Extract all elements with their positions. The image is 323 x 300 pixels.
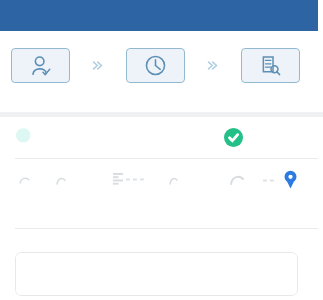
button[interactable]: Time slot step <box>126 48 185 83</box>
other: Location <box>283 170 298 189</box>
button[interactable]: Personal details step <box>11 48 70 83</box>
button[interactable] <box>15 252 298 296</box>
button[interactable] <box>0 117 323 158</box>
button[interactable]: Review documents step <box>241 48 300 83</box>
button[interactable]: Location <box>0 159 323 204</box>
